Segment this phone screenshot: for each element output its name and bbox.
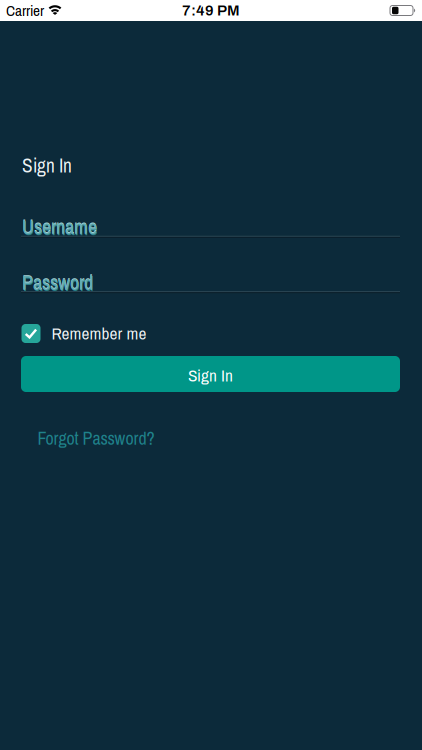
staticText: Forgot Password? [37,426,154,450]
button[interactable]: Remember me [21,324,116,347]
staticText: Username [22,213,97,240]
button[interactable]: Sign In [21,356,400,392]
staticText: Password [23,270,94,297]
button[interactable]: Forgot Password? [37,426,154,450]
staticText: Sign In [188,364,233,387]
button[interactable]: Username [21,213,400,237]
staticText: Carrier [6,0,44,21]
button[interactable]: Password [21,269,400,293]
staticText: 7:49 PM [182,2,240,19]
staticText: Remember me [51,322,146,345]
staticText: Sign In [22,152,72,178]
staticText: Password [22,269,93,296]
staticText: Password [22,269,93,295]
staticText: Username [22,213,97,240]
staticText: Username [23,215,98,241]
